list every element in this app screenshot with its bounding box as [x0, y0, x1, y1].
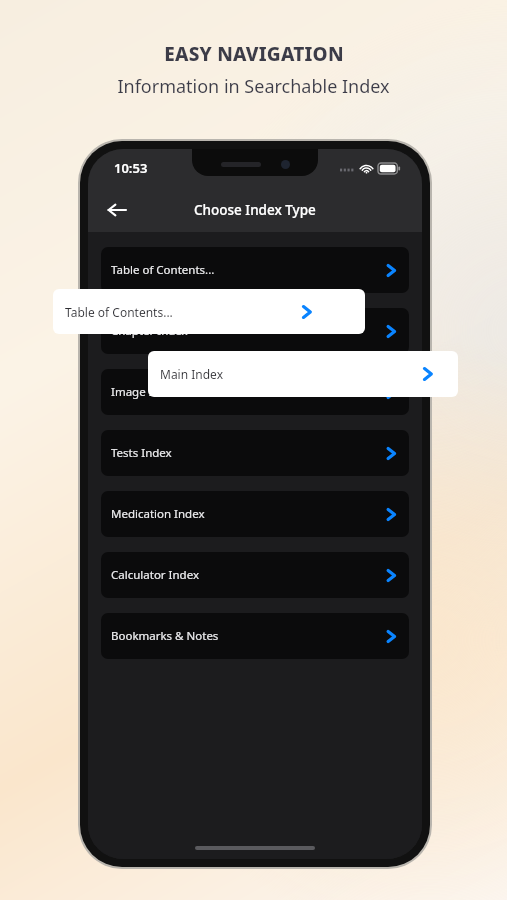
button[interactable]: Table of Contents... [101, 247, 409, 293]
staticText: Medication Index [111, 506, 205, 522]
button[interactable]: Tests Index [101, 430, 409, 476]
staticText: Main Index [160, 366, 223, 382]
button[interactable]: Bookmarks & Notes [101, 613, 409, 659]
button[interactable]: Back [98, 191, 136, 229]
staticText: Information in Searchable Index [117, 74, 390, 99]
staticText: Image Index [111, 384, 180, 400]
staticText: Calculator Index [111, 567, 199, 583]
button[interactable]: Calculator Index [101, 552, 409, 598]
staticText: Chapter Index [111, 323, 188, 339]
staticText: EASY NAVIGATION [164, 41, 344, 67]
staticText: Tests Index [111, 445, 172, 461]
staticText: Bookmarks & Notes [111, 628, 219, 644]
button[interactable]: Medication Index [101, 491, 409, 537]
button[interactable]: Table of Contents... [53, 289, 365, 334]
button[interactable]: Main Index [148, 351, 458, 397]
staticText: Choose Index Type [194, 201, 316, 219]
button[interactable]: Chapter Index [101, 308, 409, 354]
button[interactable]: Image Index [101, 369, 409, 415]
staticText: Table of Contents... [111, 262, 215, 278]
staticText: 10:53 [114, 159, 148, 177]
staticText: Table of Contents... [65, 304, 173, 320]
